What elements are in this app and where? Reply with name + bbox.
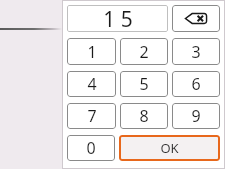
button[interactable]: 3: [172, 38, 220, 65]
staticText: 6: [191, 73, 201, 95]
button[interactable]: 7: [67, 103, 116, 129]
button[interactable]: OK: [119, 135, 220, 161]
staticText: 4: [87, 73, 97, 95]
staticText: 8: [139, 105, 149, 127]
button[interactable]: 5: [120, 71, 168, 97]
button[interactable]: 8: [120, 103, 168, 129]
button[interactable]: 4: [67, 71, 116, 97]
staticText: 3: [191, 41, 201, 63]
staticText: OK: [160, 139, 179, 157]
button[interactable]: 1: [67, 38, 116, 65]
button[interactable]: 0: [67, 135, 115, 161]
staticText: 5: [139, 73, 149, 95]
staticText: 1 5: [103, 5, 133, 32]
button[interactable]: 9: [172, 103, 220, 129]
staticText: 2: [139, 41, 149, 63]
button[interactable]: 2: [120, 38, 168, 65]
staticText: 1: [87, 41, 97, 63]
button[interactable]: Backspace: [172, 5, 220, 32]
staticText: 7: [87, 105, 97, 127]
button[interactable]: 6: [172, 71, 220, 97]
staticText: 0: [86, 137, 96, 159]
staticText: 9: [191, 105, 201, 127]
